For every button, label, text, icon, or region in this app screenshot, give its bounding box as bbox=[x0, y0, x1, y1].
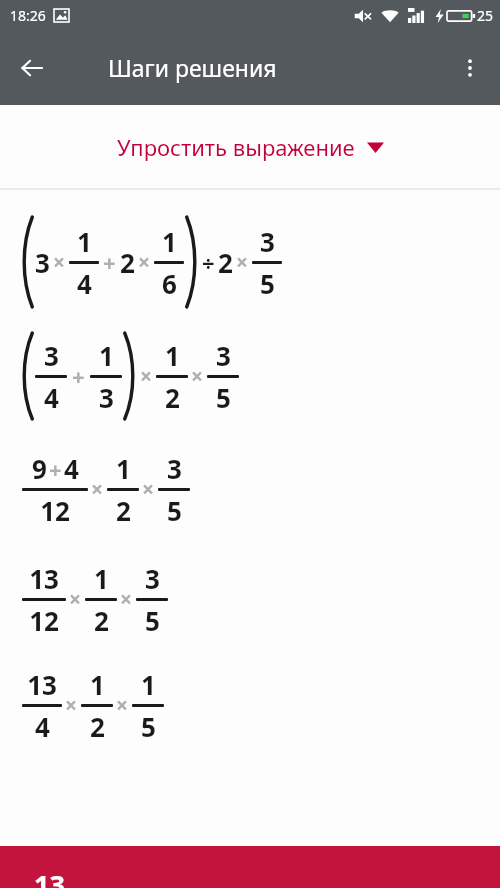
staticText: 12 bbox=[29, 603, 59, 638]
button[interactable]: 13 bbox=[0, 846, 500, 888]
staticText: Шаги решения bbox=[108, 52, 277, 83]
button[interactable]: Back bbox=[8, 44, 56, 92]
staticText: × bbox=[140, 362, 153, 391]
staticText: 4 bbox=[77, 266, 92, 301]
staticText: × bbox=[138, 248, 151, 277]
staticText: 1 bbox=[94, 561, 109, 596]
staticText: 12 bbox=[40, 493, 70, 528]
staticText: 5 bbox=[167, 493, 182, 528]
staticText: 5 bbox=[260, 266, 275, 301]
staticText: 5 bbox=[141, 709, 156, 744]
staticText: 3 bbox=[145, 561, 160, 596]
staticText: + bbox=[49, 454, 62, 484]
staticText: 2 bbox=[165, 380, 180, 415]
staticText: 2 bbox=[94, 603, 109, 638]
button[interactable]: More options bbox=[446, 44, 494, 92]
staticText: × bbox=[142, 475, 155, 504]
staticText: 1 bbox=[165, 338, 180, 373]
staticText: × bbox=[65, 691, 78, 720]
staticText: 13 bbox=[34, 866, 65, 888]
staticText: ÷ bbox=[202, 247, 215, 277]
staticText: 1 bbox=[116, 451, 131, 486]
staticText: 1 bbox=[90, 667, 105, 702]
staticText: 25 bbox=[477, 6, 494, 25]
staticText: 3 bbox=[260, 224, 275, 259]
staticText: 5 bbox=[145, 603, 160, 638]
staticText: 6 bbox=[162, 266, 177, 301]
staticText: 3 bbox=[216, 338, 231, 373]
staticText: × bbox=[116, 691, 129, 720]
staticText: 1 bbox=[141, 667, 156, 702]
staticText: 2 bbox=[218, 245, 233, 280]
staticText: 3 bbox=[44, 338, 59, 373]
staticText: 1 bbox=[77, 224, 92, 259]
staticText: 1 bbox=[99, 338, 114, 373]
staticText: × bbox=[91, 475, 104, 504]
button[interactable]: Упростить выражение bbox=[0, 105, 500, 188]
staticText: 5 bbox=[216, 380, 231, 415]
staticText: + bbox=[72, 361, 85, 391]
staticText: 3 bbox=[35, 245, 50, 280]
staticText: × bbox=[120, 585, 133, 614]
staticText: × bbox=[53, 248, 66, 277]
staticText: 9 bbox=[32, 451, 47, 486]
staticText: × bbox=[69, 585, 82, 614]
staticText: 2 bbox=[90, 709, 105, 744]
staticText: 2 bbox=[116, 493, 131, 528]
staticText: × bbox=[191, 362, 204, 391]
staticText: 2 bbox=[120, 245, 135, 280]
staticText: 1 bbox=[162, 224, 177, 259]
staticText: 13 bbox=[27, 667, 57, 702]
staticText: Упростить выражение bbox=[117, 132, 355, 162]
staticText: 4 bbox=[64, 451, 79, 486]
staticText: 18:26 bbox=[10, 6, 46, 25]
staticText: × bbox=[236, 248, 249, 277]
staticText: 3 bbox=[167, 451, 182, 486]
staticText: 4 bbox=[44, 380, 59, 415]
staticText: 4 bbox=[35, 709, 50, 744]
staticText: 3 bbox=[99, 380, 114, 415]
staticText: + bbox=[103, 247, 116, 277]
staticText: 13 bbox=[29, 561, 59, 596]
